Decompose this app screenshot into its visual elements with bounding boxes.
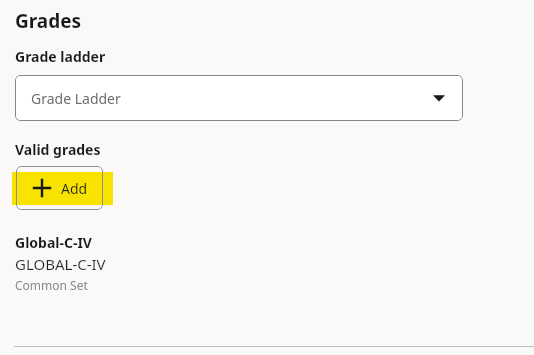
staticText: Add: [61, 179, 88, 198]
button[interactable]: Grade Ladder: [15, 75, 463, 121]
button[interactable]: Add: [16, 166, 103, 210]
button[interactable]: Global-C-IV: [0, 233, 534, 293]
staticText: Common Set: [15, 277, 88, 293]
staticText: Grade ladder: [15, 47, 106, 66]
staticText: Grades: [15, 8, 82, 34]
staticText: Grade Ladder: [31, 89, 121, 108]
staticText: GLOBAL-C-IV: [15, 254, 106, 274]
staticText: Valid grades: [15, 140, 101, 159]
staticText: Global-C-IV: [15, 233, 92, 252]
